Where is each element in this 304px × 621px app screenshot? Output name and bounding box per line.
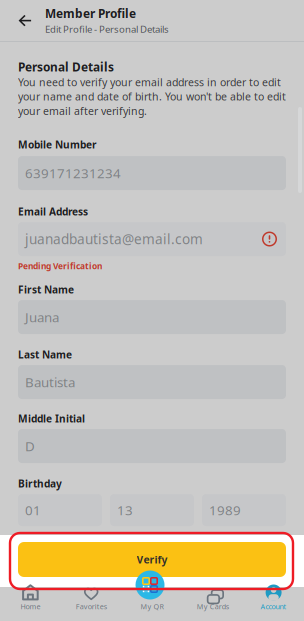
staticText: First Name: [18, 283, 74, 296]
staticText: You need to verify your email address in…: [18, 75, 286, 118]
staticText: juanadbautista@email.com: [25, 230, 203, 248]
staticText: Member Profile: [45, 5, 136, 22]
staticText: Home: [20, 602, 40, 611]
button[interactable]: Favorites: [61, 583, 122, 617]
staticText: Email Address: [18, 205, 88, 218]
staticText: My QR: [140, 602, 163, 611]
staticText: Juana: [25, 308, 59, 326]
staticText: 639171231234: [25, 164, 121, 182]
button[interactable]: Verify: [18, 542, 286, 577]
staticText: 01: [25, 501, 41, 519]
button[interactable]: My QR: [122, 583, 182, 617]
button[interactable]: My QR: [135, 570, 165, 600]
staticText: Verify: [136, 552, 167, 567]
staticText: Mobile Number: [18, 138, 97, 151]
staticText: Account: [261, 602, 287, 611]
staticText: Favorites: [76, 602, 107, 611]
button[interactable]: Account: [243, 583, 304, 617]
staticText: Pending Verification: [18, 260, 102, 272]
button[interactable]: My Cards: [182, 583, 243, 617]
staticText: Birthday: [18, 477, 62, 490]
staticText: D: [25, 437, 35, 455]
staticText: 13: [117, 501, 133, 519]
staticText: Edit Profile - Personal Details: [45, 22, 169, 36]
staticText: Personal Details: [18, 59, 114, 75]
staticText: Bautista: [25, 373, 75, 391]
button[interactable]: Home: [0, 583, 61, 617]
staticText: Middle Initial: [18, 412, 85, 425]
staticText: 1989: [209, 501, 241, 519]
staticText: My Cards: [197, 602, 229, 611]
button[interactable]: Back: [13, 5, 37, 35]
staticText: Last Name: [18, 348, 72, 361]
